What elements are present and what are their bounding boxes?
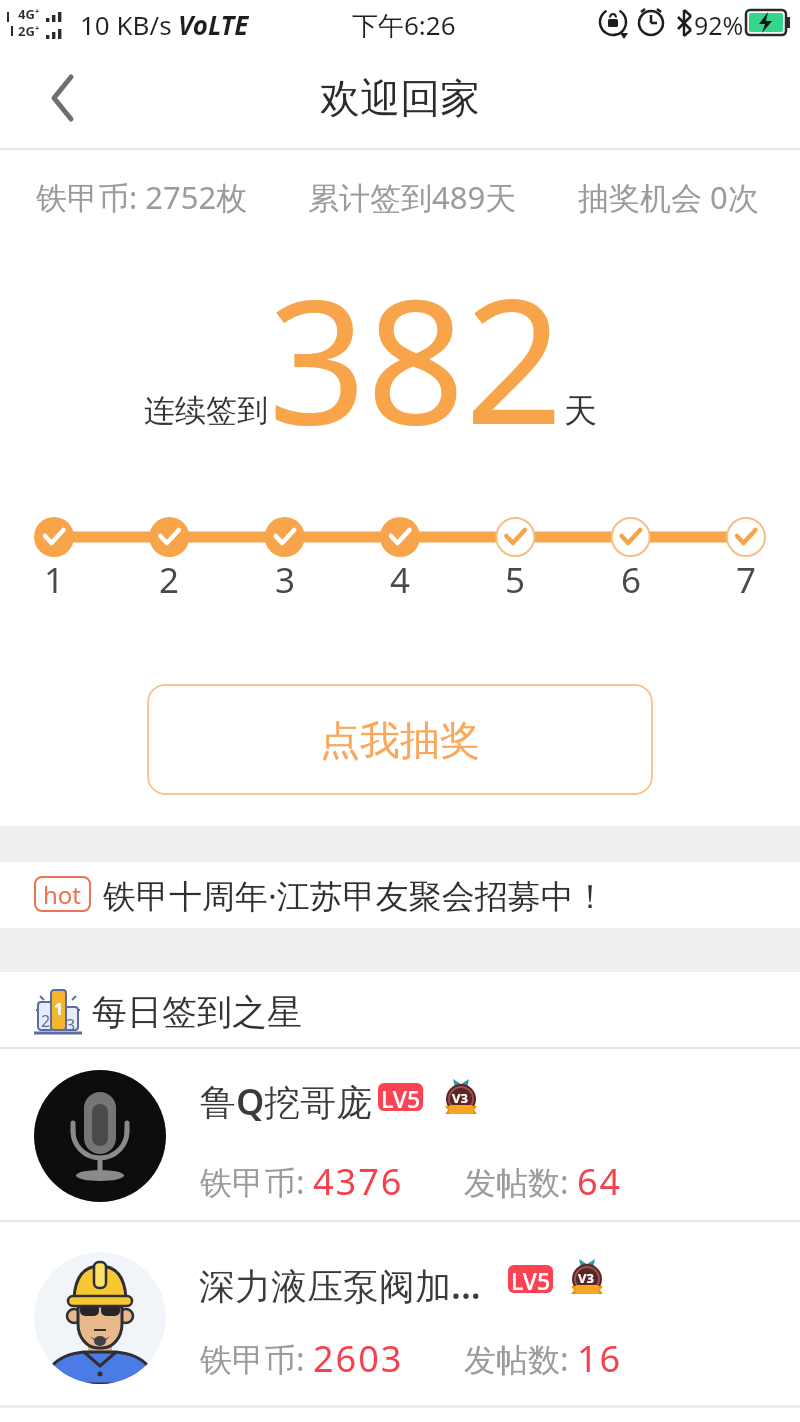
staticText: 铁甲币: bbox=[200, 1160, 313, 1204]
staticText: 2 bbox=[159, 556, 180, 600]
staticText: 4 bbox=[390, 556, 411, 600]
staticText: LV5 bbox=[511, 1265, 551, 1293]
button[interactable]: 深力液压泵阀加... bbox=[0, 1222, 800, 1408]
staticText: 64 bbox=[577, 1157, 623, 1206]
staticText: 4376 bbox=[313, 1157, 404, 1206]
button[interactable]: 点我抽奖 bbox=[147, 684, 653, 795]
staticText: 深力液压泵阀加... bbox=[199, 1261, 481, 1310]
staticText: 铁甲币: bbox=[200, 1337, 313, 1381]
staticText: 3 bbox=[275, 556, 296, 600]
staticText: hot bbox=[43, 878, 82, 911]
staticText: LV5 bbox=[381, 1083, 421, 1111]
staticText: 2603 bbox=[313, 1334, 404, 1383]
button[interactable]: hot bbox=[0, 862, 800, 928]
staticText: 发帖数: bbox=[464, 1337, 577, 1381]
staticText: 下午6:26 bbox=[352, 7, 456, 43]
staticText: 92% bbox=[694, 8, 744, 42]
staticText: 铁甲币: 2752枚 bbox=[36, 176, 248, 218]
staticText: 累计签到489天 bbox=[308, 176, 517, 218]
staticText: V3 bbox=[452, 1089, 468, 1107]
staticText: 2 bbox=[41, 1010, 51, 1032]
staticText: 16 bbox=[577, 1334, 623, 1383]
staticText: 铁甲十周年·江苏甲友聚会招募中！ bbox=[103, 873, 607, 918]
staticText: 发帖数: bbox=[464, 1160, 577, 1204]
staticText: 10 KB/s bbox=[80, 7, 172, 42]
staticText: 6 bbox=[621, 556, 642, 600]
staticText: 7 bbox=[736, 556, 757, 600]
staticText: 1 bbox=[54, 998, 64, 1020]
staticText: 382 bbox=[268, 240, 564, 474]
staticText: 4G⁺ bbox=[18, 5, 40, 23]
staticText: VoLTE bbox=[178, 7, 249, 42]
staticText: 欢迎回家 bbox=[320, 73, 480, 123]
staticText: 点我抽奖 bbox=[320, 715, 480, 765]
staticText: 每日签到之星 bbox=[92, 990, 302, 1034]
button[interactable] bbox=[30, 73, 80, 123]
staticText: V3 bbox=[578, 1269, 594, 1287]
staticText: 天 bbox=[564, 390, 597, 432]
button[interactable]: 鲁Q挖哥庞 bbox=[0, 1049, 800, 1222]
staticText: 3 bbox=[66, 1014, 76, 1036]
staticText: 5 bbox=[505, 556, 526, 600]
staticText: 2G⁺ bbox=[18, 22, 40, 40]
staticText: 连续签到 bbox=[144, 391, 268, 430]
staticText: 抽奖机会 0次 bbox=[578, 176, 759, 218]
staticText: 鲁Q挖哥庞 bbox=[200, 1077, 373, 1126]
staticText: 1 bbox=[44, 556, 65, 600]
